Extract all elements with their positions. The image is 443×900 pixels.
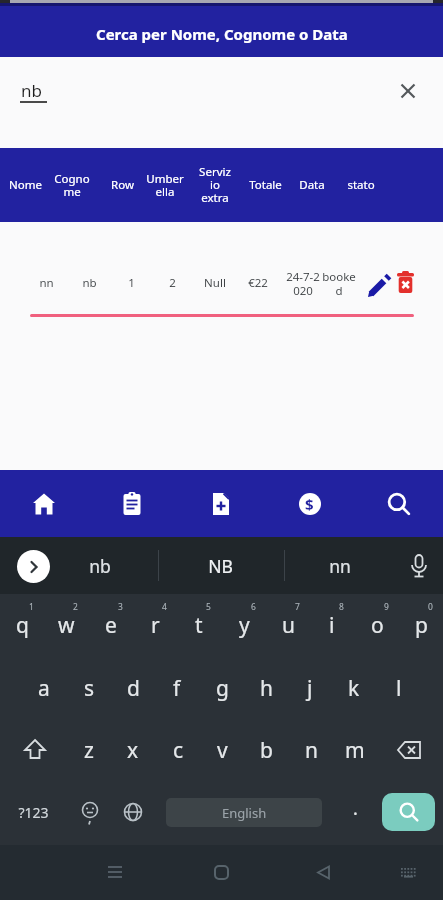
staticText: 3 <box>118 601 123 613</box>
button[interactable]: i <box>310 597 354 653</box>
button[interactable]: f <box>155 660 199 716</box>
button[interactable]: b <box>244 722 288 778</box>
button[interactable] <box>80 802 100 826</box>
staticText: r <box>151 611 160 640</box>
button[interactable] <box>316 865 331 880</box>
button[interactable] <box>397 271 415 295</box>
button[interactable] <box>176 470 265 537</box>
staticText: 0 <box>428 601 433 613</box>
staticText: 2 <box>73 601 78 613</box>
button[interactable]: nb <box>55 531 145 601</box>
button[interactable] <box>400 867 417 879</box>
staticText: n <box>305 736 318 765</box>
staticText: 24-7-2 020 <box>286 269 320 298</box>
staticText: 1 <box>128 275 135 291</box>
button[interactable]: v <box>200 722 244 778</box>
button[interactable]: a <box>22 660 66 716</box>
button[interactable]: $ <box>265 470 354 537</box>
button[interactable]: m <box>333 722 377 778</box>
staticText: s <box>84 674 95 703</box>
staticText: 1 <box>29 601 34 613</box>
button[interactable]: w <box>44 597 88 653</box>
staticText: nb <box>21 79 42 102</box>
staticText: $ <box>305 494 314 514</box>
button[interactable] <box>17 550 50 583</box>
staticText: z <box>84 736 94 765</box>
button[interactable] <box>123 802 143 822</box>
button[interactable]: c <box>156 722 200 778</box>
staticText: . <box>353 796 358 821</box>
button[interactable]: English <box>166 798 322 827</box>
staticText: g <box>216 674 229 703</box>
button[interactable]: y <box>222 597 266 653</box>
button[interactable] <box>408 554 430 580</box>
staticText: y <box>239 611 250 640</box>
button[interactable]: z <box>67 722 111 778</box>
button[interactable]: q <box>0 597 44 653</box>
staticText: €22 <box>248 275 268 291</box>
button[interactable] <box>382 793 435 831</box>
staticText: u <box>282 611 295 640</box>
button[interactable]: . <box>310 773 400 843</box>
staticText: English <box>222 804 267 822</box>
staticText: t <box>195 611 203 640</box>
staticText: nb <box>89 554 111 578</box>
button[interactable] <box>22 738 48 762</box>
button[interactable]: u <box>266 597 310 653</box>
staticText: p <box>415 611 428 640</box>
staticText: j <box>307 674 313 703</box>
staticText: ?123 <box>18 803 49 822</box>
button[interactable]: nn <box>295 531 385 601</box>
button[interactable] <box>0 470 88 537</box>
staticText: v <box>217 736 228 765</box>
button[interactable] <box>88 470 176 537</box>
button[interactable]: h <box>244 660 288 716</box>
staticText: c <box>173 736 184 765</box>
staticText: 8 <box>339 601 344 613</box>
button[interactable] <box>214 865 229 880</box>
button[interactable]: j <box>288 660 332 716</box>
button[interactable] <box>354 470 443 537</box>
staticText: nb <box>82 275 97 291</box>
staticText: 2 <box>169 275 176 291</box>
button[interactable]: NB <box>175 531 265 601</box>
staticText: booke d <box>322 269 356 298</box>
button[interactable]: o <box>355 597 399 653</box>
staticText: m <box>345 736 365 765</box>
button[interactable]: l <box>377 660 421 716</box>
button[interactable]: e <box>89 597 133 653</box>
staticText: Totale <box>249 177 282 193</box>
staticText: Cerca per Nome, Cognome o Data <box>96 24 348 44</box>
button[interactable]: t <box>177 597 221 653</box>
staticText: o <box>371 611 384 640</box>
staticText: Umber ella <box>146 171 184 200</box>
staticText: 6 <box>251 601 256 613</box>
button[interactable]: p <box>399 597 443 653</box>
button[interactable] <box>396 740 422 760</box>
button[interactable]: d <box>111 660 155 716</box>
staticText: f <box>173 674 181 703</box>
staticText: k <box>348 674 360 703</box>
button[interactable]: s <box>67 660 111 716</box>
staticText: d <box>127 674 140 703</box>
staticText: b <box>260 736 273 765</box>
staticText: 9 <box>384 601 389 613</box>
staticText: 7 <box>295 601 300 613</box>
staticText: Nome <box>9 177 42 193</box>
button[interactable]: x <box>111 722 155 778</box>
button[interactable]: k <box>332 660 376 716</box>
button[interactable]: n <box>289 722 333 778</box>
staticText: 5 <box>206 601 211 613</box>
staticText: Cogno me <box>54 171 90 200</box>
button[interactable]: ?123 <box>0 777 78 847</box>
staticText: Serviz io extra <box>199 164 231 206</box>
staticText: h <box>260 674 273 703</box>
staticText: i <box>329 611 335 640</box>
staticText: nn <box>329 554 351 578</box>
button[interactable] <box>366 269 394 297</box>
button[interactable]: g <box>200 660 244 716</box>
button[interactable]: r <box>133 597 177 653</box>
button[interactable] <box>107 865 123 879</box>
button[interactable] <box>400 83 416 99</box>
staticText: 4 <box>162 601 167 613</box>
